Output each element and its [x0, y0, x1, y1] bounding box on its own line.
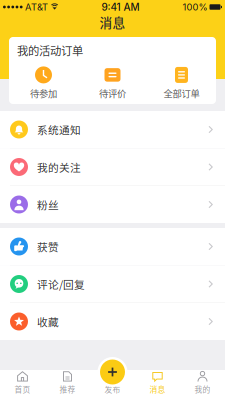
- staticText: 评论/回复: [37, 276, 85, 292]
- staticText: 收藏: [37, 314, 59, 329]
- staticText: 系统通知: [37, 122, 81, 137]
- staticText: 我的活动订单: [17, 42, 83, 58]
- staticText: 消息: [149, 384, 165, 395]
- staticText: 发布: [104, 384, 120, 395]
- staticText: 待参加: [30, 86, 57, 100]
- staticText: 9:41 AM: [101, 1, 139, 13]
- staticText: 我的关注: [37, 159, 81, 175]
- staticText: 获赞: [37, 239, 59, 254]
- button[interactable]: 待评价: [78, 66, 147, 100]
- staticText: 待评价: [99, 86, 126, 100]
- button[interactable]: 粉丝: [0, 186, 225, 223]
- staticText: 粉丝: [37, 197, 59, 212]
- button[interactable]: 我的关注: [0, 148, 225, 186]
- button[interactable]: 发布: [97, 357, 127, 387]
- staticText: 全部订单: [163, 86, 199, 100]
- button[interactable]: 消息: [135, 371, 180, 395]
- button[interactable]: 获赞: [0, 228, 225, 265]
- staticText: 消息: [99, 13, 125, 31]
- button[interactable]: 推荐: [45, 371, 90, 395]
- staticText: 我的: [194, 384, 210, 395]
- button[interactable]: 发布: [90, 371, 135, 395]
- staticText: 100%: [182, 1, 207, 13]
- button[interactable]: 我的: [180, 371, 225, 395]
- button[interactable]: 首页: [0, 371, 45, 395]
- button[interactable]: 收藏: [0, 303, 225, 340]
- staticText: 首页: [14, 384, 30, 395]
- button[interactable]: 系统通知: [0, 111, 225, 148]
- button[interactable]: 全部订单: [147, 66, 216, 100]
- button[interactable]: 评论/回复: [0, 265, 225, 303]
- staticText: 推荐: [59, 384, 75, 395]
- button[interactable]: 待参加: [9, 66, 78, 100]
- staticText: AT&T: [25, 1, 48, 13]
